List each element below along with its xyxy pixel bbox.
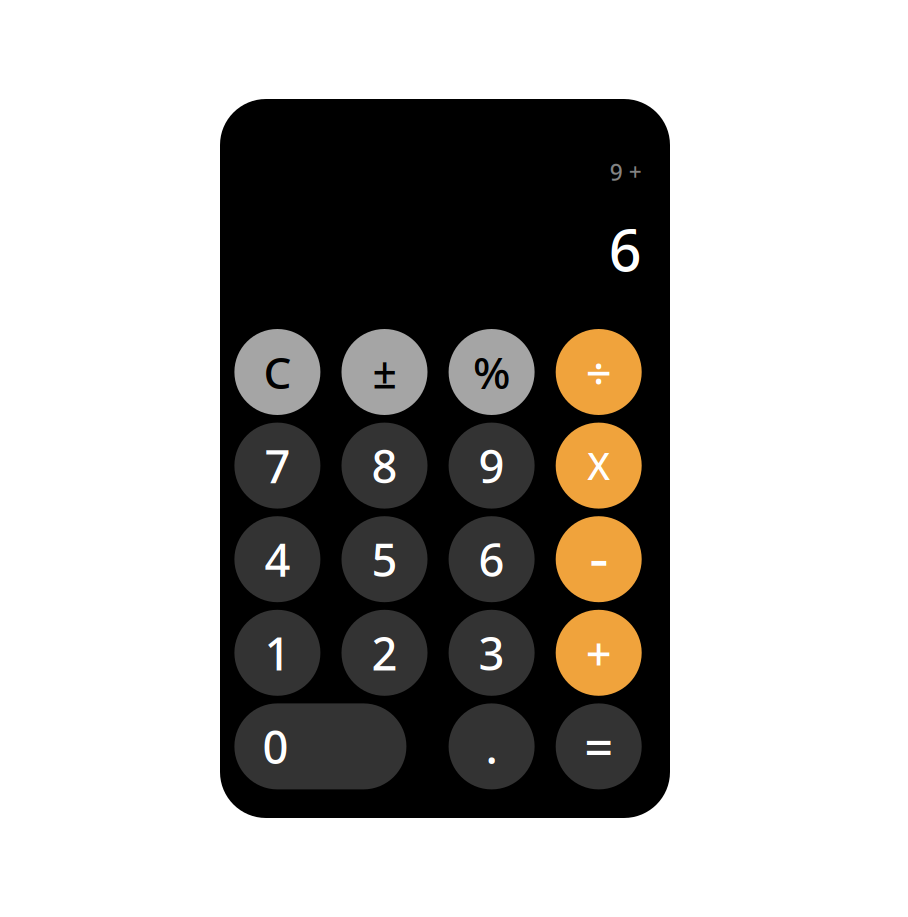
staticText: 9 + [610,157,642,187]
staticText: 6 [479,529,505,589]
staticText: 9 [479,435,505,496]
button[interactable]: Add [556,610,642,696]
staticText: . [486,716,498,776]
staticText: 6 [609,211,642,287]
button[interactable]: 1 [234,610,320,696]
staticText: 4 [264,529,290,589]
button[interactable]: Divide [556,329,642,415]
staticText: 8 [371,435,397,496]
button[interactable]: 9 [449,423,535,509]
button[interactable]: 2 [341,610,427,696]
button[interactable]: Percent [449,329,535,415]
button[interactable]: 3 [449,610,535,696]
button[interactable]: Toggle sign [341,329,427,415]
staticText: ÷ [586,342,612,402]
button[interactable]: 7 [234,423,320,509]
button[interactable]: 8 [341,423,427,509]
staticText: X [587,441,610,490]
button[interactable]: 5 [341,516,427,602]
staticText: + [586,623,612,683]
staticText: 2 [371,623,397,683]
button[interactable]: Decimal point [449,703,535,789]
staticText: 5 [371,529,397,589]
staticText: 0 [262,716,288,776]
button[interactable]: Subtract [556,516,642,602]
button[interactable]: Zero [234,703,406,789]
staticText: – [590,536,607,582]
staticText: = [584,713,613,780]
staticText: ± [372,344,396,400]
button[interactable]: Equals [556,703,642,789]
staticText: 1 [264,623,290,683]
staticText: C [263,343,291,401]
staticText: 3 [479,623,505,683]
staticText: 7 [264,435,290,496]
button[interactable]: 4 [234,516,320,602]
button[interactable]: 6 [449,516,535,602]
button[interactable]: Multiply [556,423,642,509]
staticText: % [473,343,510,401]
button[interactable]: Clear [234,329,320,415]
